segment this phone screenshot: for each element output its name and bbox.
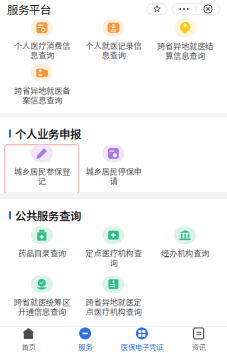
staticText: 首页 [21, 341, 35, 352]
staticText: 定点医疗机构查询 [85, 247, 141, 268]
button[interactable]: More [172, 3, 196, 15]
button[interactable]: 跨省异地就医备案信息查询 [6, 64, 78, 109]
staticText: 服务平台 [7, 1, 51, 17]
button[interactable]: 个人就医记录信息查询 [78, 19, 149, 64]
staticText: 城乡居民停保申请 [85, 165, 141, 186]
staticText: 个人医疗消费信息查询 [14, 39, 70, 61]
staticText: 城乡居民参保登记 [14, 165, 70, 186]
staticText: 医保电子凭证 [121, 341, 163, 352]
staticText: 跨省异地就医结算信息查询 [157, 40, 213, 61]
button[interactable]: 城乡居民停保申请 [78, 145, 149, 194]
button[interactable]: 城乡居民参保登记 [6, 145, 78, 194]
staticText: 跨省就医统筹区开通信息查询 [14, 296, 70, 317]
staticText: 资讯 [192, 341, 206, 352]
button[interactable]: 跨省就医统筹区开通信息查询 [6, 275, 78, 324]
button[interactable]: 服务 [57, 326, 114, 353]
staticText: 经办机构查询 [161, 247, 209, 258]
button[interactable]: 个人医疗消费信息查询 [6, 19, 78, 64]
staticText: 服务 [78, 341, 92, 352]
staticText: 个人业务申报 [15, 125, 81, 142]
button[interactable]: 药品目录查询 [6, 226, 78, 275]
button[interactable]: 跨省异地就医结算信息查询 [149, 19, 221, 64]
button[interactable]: 经办机构查询 [149, 226, 221, 275]
staticText: 跨省异地就医定点医疗机构查询 [85, 296, 141, 317]
button[interactable]: 跨省异地就医定点医疗机构查询 [78, 275, 149, 324]
button[interactable]: 首页 [0, 326, 57, 353]
button[interactable]: Favourite [147, 3, 167, 15]
button[interactable]: 资讯 [170, 326, 227, 353]
button[interactable]: 医保电子凭证 [113, 326, 170, 353]
staticText: 公共服务查询 [15, 207, 81, 223]
staticText: 药品目录查询 [18, 247, 66, 258]
staticText: 个人就医记录信息查询 [85, 39, 141, 61]
button[interactable]: Close [196, 3, 220, 15]
staticText: 跨省异地就医备案信息查询 [14, 84, 70, 106]
button[interactable]: 定点医疗机构查询 [78, 226, 149, 275]
